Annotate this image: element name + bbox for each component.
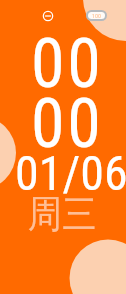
button[interactable]: 00 xyxy=(31,24,104,104)
button[interactable]: Battery xyxy=(88,12,105,19)
button[interactable]: Do not disturb xyxy=(37,5,58,26)
button[interactable]: 01/06 xyxy=(15,145,126,201)
staticText: 00 xyxy=(31,24,104,104)
button[interactable]: 周三 xyxy=(28,190,104,238)
staticText: 00 xyxy=(31,84,104,164)
staticText: 周三 xyxy=(28,190,96,238)
staticText: 100 xyxy=(92,12,101,19)
button[interactable]: 00 xyxy=(31,84,104,164)
staticText: 01/06 xyxy=(15,145,126,201)
